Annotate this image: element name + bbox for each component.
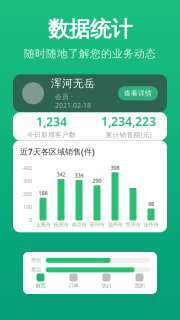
button[interactable]: 首页 <box>24 273 57 289</box>
staticText: 常州市 <box>125 221 140 228</box>
staticText: 杭州市 <box>53 221 68 228</box>
button[interactable]: 订单 <box>57 273 90 289</box>
staticText: 398 <box>110 164 119 171</box>
staticText: 浑河无岳 <box>51 77 95 90</box>
staticText: 会员 · 2021-02-18 <box>55 92 91 110</box>
staticText: 累计销售额(元) <box>105 130 151 139</box>
staticText: 200 <box>23 190 32 197</box>
staticText: 类目 <box>31 257 41 264</box>
staticText: 徐州市 <box>143 221 158 228</box>
staticText: 近7天各区域销售(件) <box>20 146 95 157</box>
staticText: 数据统计 <box>48 16 132 42</box>
staticText: 我的 <box>134 282 144 289</box>
staticText: 首页 <box>35 282 45 289</box>
staticText: 0 <box>29 216 32 223</box>
staticText: 订单 <box>68 282 78 289</box>
staticText: 1,234,223 <box>101 113 156 129</box>
staticText: 苏州市 <box>89 221 104 228</box>
staticText: 300 <box>23 177 32 184</box>
staticText: 随时随地了解您的业务动态 <box>24 47 156 60</box>
staticText: 342 <box>56 171 65 178</box>
staticText: 98 <box>148 200 154 207</box>
button[interactable]: 统计 <box>90 273 123 289</box>
staticText: 334 <box>74 172 83 179</box>
staticText: 查看详情 <box>124 89 152 97</box>
staticText: 统计 <box>101 282 111 289</box>
staticText: 南京市 <box>71 221 86 228</box>
staticText: 188 <box>38 190 47 197</box>
staticText: 类目 <box>31 267 41 273</box>
button[interactable]: 查看详情 <box>118 86 158 100</box>
button[interactable]: 我的 <box>123 273 156 289</box>
staticText: 温州市 <box>107 221 122 228</box>
staticText: 400 <box>23 164 32 171</box>
staticText: 1,234 <box>36 114 67 130</box>
staticText: 290 <box>92 177 101 184</box>
staticText: 上海市 <box>35 221 50 228</box>
staticText: 100 <box>23 203 32 210</box>
staticText: 今日新增客户数 <box>27 131 76 139</box>
